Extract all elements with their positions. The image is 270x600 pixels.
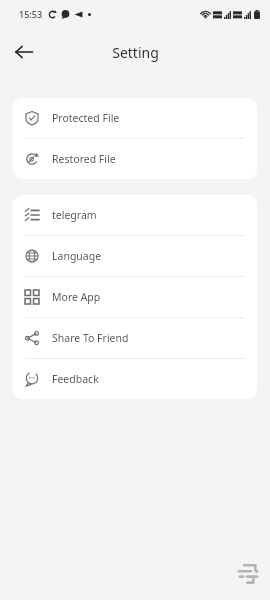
staticText: More App <box>52 290 101 304</box>
button[interactable]: Restored File <box>13 139 257 179</box>
staticText: Feedback <box>52 372 99 386</box>
button[interactable]: Share To Friend <box>13 318 257 358</box>
staticText: telegram <box>52 208 97 222</box>
button[interactable]: Language <box>13 236 257 276</box>
button[interactable]: Back <box>7 35 41 69</box>
button[interactable]: Protected File <box>13 98 257 138</box>
staticText: Language <box>52 249 102 263</box>
button[interactable]: telegram <box>13 195 257 235</box>
staticText: 15:53 <box>19 8 43 20</box>
button[interactable]: Feedback <box>13 359 257 399</box>
staticText: Restored File <box>52 152 116 166</box>
staticText: Protected File <box>52 111 120 125</box>
staticText: Setting <box>112 43 159 62</box>
staticText: Share To Friend <box>52 331 129 345</box>
button[interactable]: More App <box>13 277 257 317</box>
